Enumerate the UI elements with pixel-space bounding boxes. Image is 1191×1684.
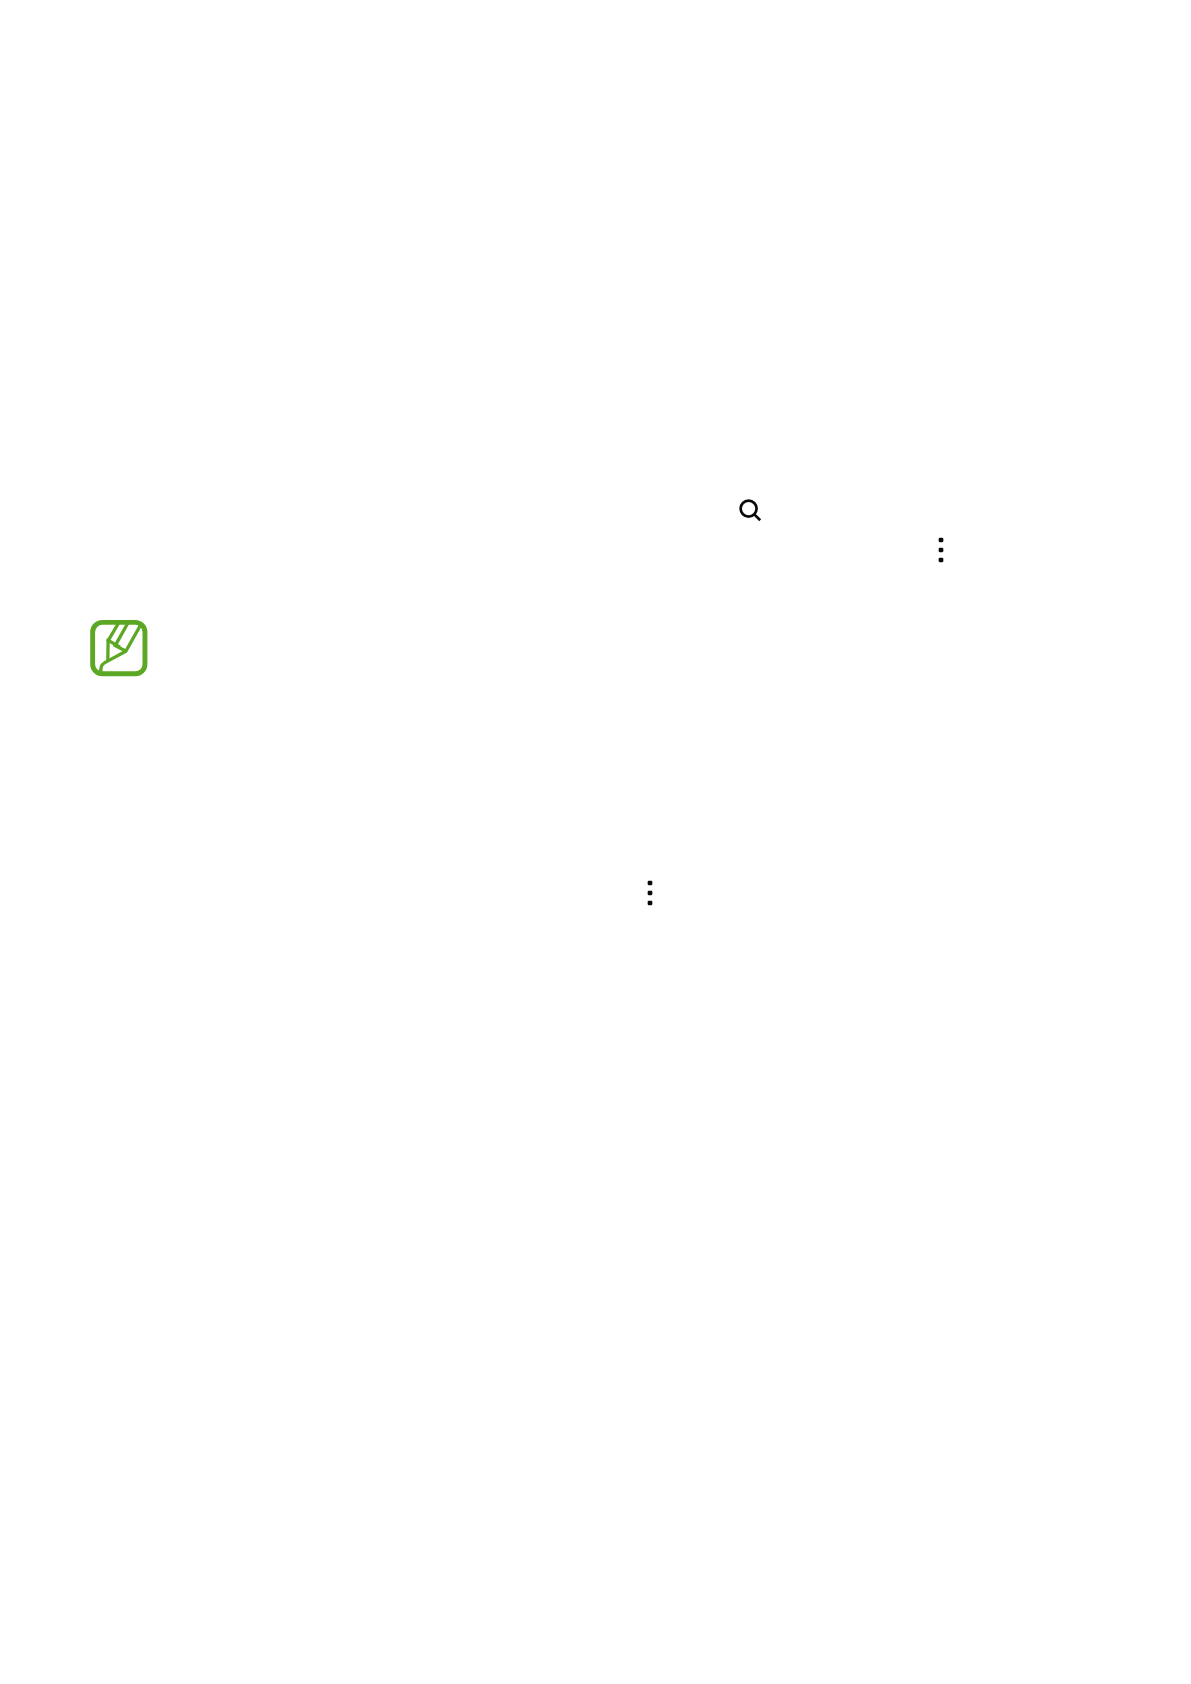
button[interactable]: More options (917, 526, 965, 574)
button[interactable]: Search (724, 484, 772, 532)
button[interactable]: Samsung Notes (89, 618, 149, 678)
button[interactable]: More options (626, 869, 674, 917)
